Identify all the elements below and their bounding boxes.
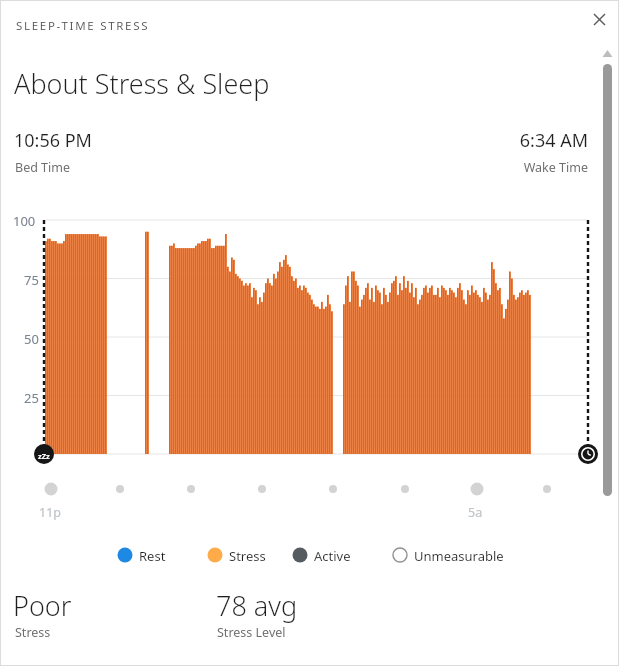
staticText: Bed Time — [15, 159, 71, 176]
staticText: 75 — [24, 271, 39, 289]
button[interactable]: Active — [292, 543, 329, 567]
staticText: 25 — [24, 389, 39, 407]
staticText: Poor — [13, 587, 72, 624]
staticText: zZz — [38, 451, 50, 461]
staticText: Active — [314, 547, 351, 565]
staticText: 100 — [13, 212, 36, 230]
button[interactable]: Close — [586, 6, 612, 32]
staticText: 50 — [24, 330, 39, 348]
staticText: 11p — [39, 504, 61, 521]
staticText: Stress Level — [217, 624, 286, 641]
staticText: SLEEP-TIME STRESS — [16, 18, 150, 34]
staticText: Rest — [139, 547, 166, 565]
staticText: 6:34 AM — [0, 128, 588, 153]
staticText: Wake Time — [0, 159, 588, 176]
staticText: 10:56 PM — [14, 128, 92, 153]
button[interactable]: Unmeasurable — [392, 543, 482, 567]
staticText: Unmeasurable — [414, 547, 504, 565]
staticText: Stress — [229, 547, 266, 565]
button[interactable]: Scroll — [598, 44, 617, 504]
button[interactable]: Stress — [207, 543, 244, 567]
staticText: About Stress & Sleep — [14, 65, 270, 102]
staticText: 78 avg — [216, 587, 298, 624]
staticText: 5a — [468, 504, 483, 521]
button[interactable]: Rest — [117, 543, 144, 567]
staticText: Stress — [15, 624, 51, 641]
